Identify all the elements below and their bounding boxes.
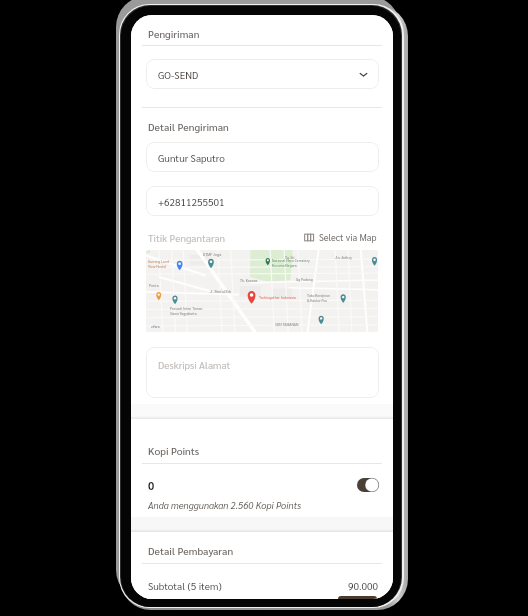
staticText: National Hero Cemetery Kusuma Negara [272, 258, 310, 268]
button[interactable]: Map [302, 229, 379, 245]
staticText: vifara [151, 324, 160, 329]
staticText: Detail Pembayaran [148, 544, 234, 557]
staticText: Jln. Asthey [335, 255, 352, 260]
button[interactable]: Pesan Sekarang [338, 596, 377, 599]
staticText: Techtogether Indonesia [259, 295, 296, 300]
staticText: Detail Pengiriman [148, 120, 229, 133]
staticText: 90.000 [348, 579, 379, 592]
staticText: Guntur Saputro [158, 151, 225, 164]
staticText: +62811255501 [158, 195, 225, 208]
staticText: SDN TAMANAN [275, 322, 299, 327]
staticText: Deskripsi Alamat [158, 358, 231, 371]
staticText: Select via Map [319, 231, 377, 243]
staticText: Jl. Bantul Brb [210, 289, 231, 294]
staticText: Prmta [149, 283, 159, 288]
button[interactable]: Deskripsi Alamat [146, 347, 379, 398]
staticText: Anda menggunakan 2.560 Kopi Points [148, 499, 302, 511]
button[interactable]: GO-SEND [146, 59, 379, 89]
other: Map [304, 232, 315, 243]
staticText: Kopi Points [148, 444, 200, 457]
button[interactable]: Peta lokasi [146, 250, 378, 332]
staticText: Gg Padang [296, 277, 313, 282]
staticText: Pengiriman [148, 27, 200, 40]
staticText: Th. Kesawa [240, 278, 258, 283]
staticText: Toko Kerajinan & Kantor Pos [307, 293, 330, 303]
staticText: DTMP Jogja [203, 252, 222, 257]
staticText: GO-SEND [158, 68, 199, 81]
staticText: Tg. Sri [285, 255, 295, 260]
staticText: 0 [148, 478, 155, 492]
button[interactable]: Gunakan Kopi Points [357, 478, 379, 492]
staticText: Titik Pengantaran [148, 231, 226, 244]
staticText: Prasasti Inten Taman Siswa Yogyakarta [170, 306, 203, 316]
staticText: Gurning Land View Hostel [148, 259, 169, 269]
staticText: Subtotal (5 item) [148, 579, 222, 592]
button[interactable]: Guntur Saputro [146, 142, 379, 172]
other: Expand [358, 69, 369, 80]
button[interactable]: +62811255501 [146, 186, 379, 216]
